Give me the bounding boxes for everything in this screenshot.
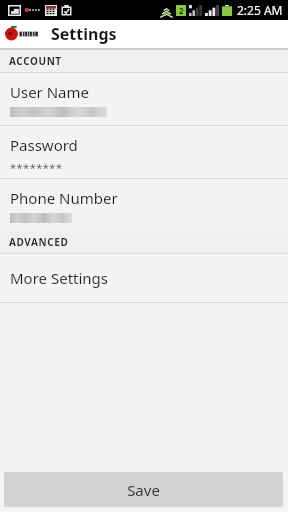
staticText: ******** (10, 160, 63, 175)
button[interactable]: User Name (0, 73, 288, 125)
button[interactable]: More Settings (0, 254, 288, 302)
staticText: ADVANCED (9, 235, 69, 249)
staticText: 2:25 AM (237, 2, 283, 18)
staticText: User Name (10, 82, 90, 102)
button[interactable]: Phone Number (0, 179, 288, 231)
staticText: Settings (51, 23, 117, 45)
staticText: 2 (179, 5, 184, 16)
staticText: More Settings (10, 268, 109, 288)
button[interactable]: Password (0, 126, 288, 178)
staticText: ACCOUNT (9, 54, 62, 68)
button[interactable]: Save (4, 472, 283, 507)
staticText: Phone Number (10, 188, 118, 208)
staticText: Password (10, 135, 78, 155)
other: App logo (4, 27, 42, 41)
staticText: Save (127, 480, 160, 500)
